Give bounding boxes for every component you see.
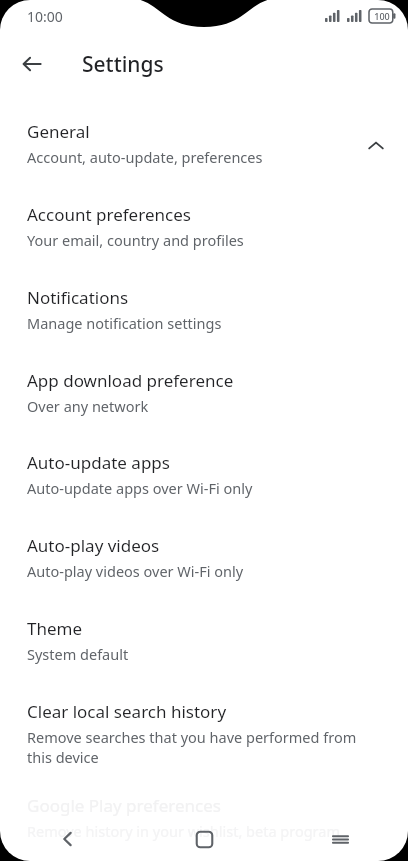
- staticText: Theme: [27, 617, 83, 640]
- button[interactable]: Home: [136, 817, 272, 861]
- staticText: 10:00: [27, 7, 63, 26]
- staticText: Auto-update apps over Wi-Fi only: [27, 478, 387, 498]
- staticText: General: [27, 120, 90, 143]
- staticText: Auto-update apps: [27, 451, 170, 474]
- staticText: Clear local search history: [27, 700, 227, 723]
- button[interactable]: Notifications: [0, 286, 408, 342]
- button[interactable]: Recent apps: [272, 817, 408, 861]
- staticText: Notifications: [27, 286, 129, 309]
- button[interactable]: Collapse: [352, 122, 400, 170]
- button[interactable]: Theme: [0, 617, 408, 673]
- staticText: App download preference: [27, 369, 234, 392]
- staticText: Account preferences: [27, 203, 191, 226]
- button[interactable]: Back: [8, 40, 56, 88]
- staticText: Auto-play videos: [27, 534, 160, 557]
- staticText: Manage notification settings: [27, 313, 387, 333]
- staticText: Remove history in your wishlist, beta pr…: [27, 821, 387, 841]
- button[interactable]: App download preference: [0, 369, 408, 425]
- staticText: Remove searches that you have performed …: [27, 727, 372, 768]
- staticText: Over any network: [27, 396, 387, 416]
- staticText: Your email, country and profiles: [27, 230, 387, 250]
- staticText: Account, auto-update, preferences: [27, 147, 387, 167]
- staticText: System default: [27, 644, 387, 664]
- staticText: Google Play preferences: [27, 794, 221, 817]
- button[interactable]: Auto-update apps: [0, 451, 408, 507]
- button[interactable]: General: [0, 120, 408, 176]
- button[interactable]: Clear local search history: [0, 700, 408, 774]
- staticText: Settings: [82, 50, 164, 79]
- staticText: 100: [374, 10, 390, 22]
- staticText: Auto-play videos over Wi-Fi only: [27, 561, 387, 581]
- button[interactable]: Account preferences: [0, 203, 408, 259]
- button[interactable]: Back: [0, 817, 136, 861]
- button[interactable]: Auto-play videos: [0, 534, 408, 590]
